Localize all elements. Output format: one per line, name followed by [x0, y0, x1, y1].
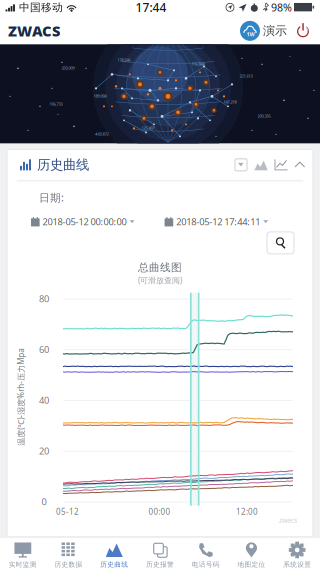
- staticText: zwacs: [279, 516, 297, 525]
- button[interactable]: Area chart: [251, 157, 271, 173]
- button[interactable]: 系统设置: [274, 537, 320, 577]
- staticText: 203,009: [61, 65, 74, 70]
- staticText: 98%: [271, 0, 292, 14]
- staticText: 2018-05-12 00:00:00: [43, 215, 127, 228]
- staticText: 106,733: [49, 101, 62, 106]
- button[interactable]: Power off: [287, 22, 311, 39]
- staticText: ZWACS: [8, 21, 60, 41]
- staticText: 历史曲线: [100, 560, 128, 569]
- staticText: 系统设置: [283, 560, 311, 569]
- staticText: 2018-05-12 17:44:11: [176, 215, 260, 228]
- button[interactable]: 历史报警: [137, 537, 183, 577]
- button[interactable]: 历史曲线: [91, 537, 137, 577]
- staticText: 历史曲线: [37, 157, 89, 173]
- staticText: 143,872: [95, 131, 108, 136]
- staticText: 电话号码: [192, 560, 220, 569]
- staticText: 历史报警: [146, 560, 174, 569]
- staticText: 地图定位: [237, 560, 265, 569]
- staticText: 200,355: [257, 113, 270, 118]
- staticText: 演示: [263, 23, 287, 38]
- button[interactable]: 电话号码: [183, 537, 229, 577]
- staticText: 中国移动: [19, 1, 63, 14]
- staticText: 125,407: [141, 125, 154, 130]
- staticText: 总曲线图: [138, 261, 182, 274]
- staticText: (可滑放查阅): [138, 275, 182, 286]
- staticText: 0: [41, 495, 46, 508]
- button[interactable]: Collapse: [291, 157, 309, 173]
- staticText: 147,218: [223, 99, 236, 104]
- button[interactable]: Line chart: [271, 157, 291, 173]
- button[interactable]: Options: [231, 157, 251, 173]
- staticText: 实时监测: [9, 560, 37, 569]
- button[interactable]: Search: [267, 232, 294, 254]
- staticText: 00:00: [149, 506, 171, 517]
- staticText: 温度(℃)-湿度%rh-压力Mpa: [0, 392, 69, 402]
- button[interactable]: 2018-05-12 17:44:11: [165, 215, 268, 228]
- staticText: 历史数据: [55, 560, 83, 569]
- staticText: 60: [39, 343, 49, 356]
- button[interactable]: 1W: [240, 21, 287, 41]
- staticText: 1W: [247, 30, 255, 38]
- staticText: 80: [39, 292, 49, 305]
- staticText: 12:00: [236, 506, 258, 517]
- staticText: 日期:: [39, 190, 64, 205]
- staticText: 05-12: [56, 506, 79, 517]
- button[interactable]: 地图定位: [229, 537, 274, 577]
- staticText: 17:44: [135, 0, 166, 15]
- staticText: 20: [39, 445, 49, 457]
- staticText: 189,004: [93, 93, 106, 98]
- staticText: 221,613: [239, 73, 252, 78]
- button[interactable]: 历史数据: [46, 537, 91, 577]
- staticText: 116,844: [191, 61, 204, 66]
- button[interactable]: 2018-05-12 00:00:00: [31, 215, 135, 228]
- button[interactable]: 实时监测: [0, 537, 46, 577]
- staticText: 40: [39, 394, 49, 406]
- staticText: 178,546: [117, 57, 130, 62]
